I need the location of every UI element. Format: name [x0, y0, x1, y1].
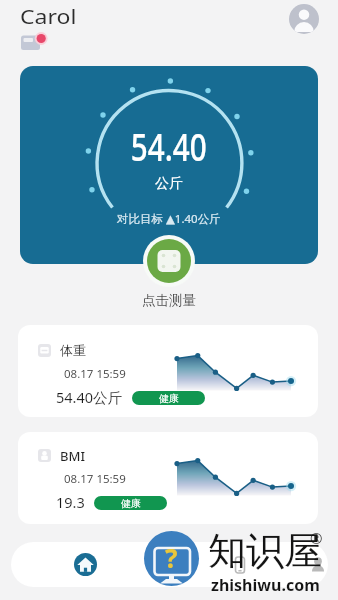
- button[interactable]: Devices: [208, 542, 272, 587]
- staticText: 19.3: [56, 492, 85, 512]
- button[interactable]: 54.40: [20, 66, 318, 264]
- staticText: 对比目标 ▲1.40公斤: [117, 211, 221, 227]
- staticText: Carol: [20, 3, 76, 30]
- button[interactable]: Profile: [286, 542, 328, 587]
- staticText: 体重: [60, 342, 86, 358]
- staticText: 54.40公斤: [56, 387, 123, 407]
- staticText: 08.17 15:59: [64, 471, 126, 487]
- staticText: ®: [310, 528, 323, 548]
- button[interactable]: Statistics: [131, 542, 195, 587]
- staticText: 健康: [159, 392, 179, 405]
- button[interactable]: Profile: [289, 4, 319, 34]
- staticText: 54.40: [131, 120, 207, 172]
- staticText: 08.17 15:59: [64, 366, 126, 382]
- button[interactable]: BMI: [18, 432, 318, 524]
- button[interactable]: Messages: [20, 32, 48, 52]
- button[interactable]: Start measurement: [147, 239, 191, 283]
- button[interactable]: 体重: [18, 325, 318, 417]
- staticText: 知识屋: [208, 527, 322, 575]
- staticText: 健康: [121, 497, 141, 510]
- staticText: 公斤: [155, 175, 183, 193]
- staticText: zhishiwu.com: [211, 574, 320, 596]
- staticText: BMI: [60, 447, 86, 465]
- button[interactable]: Home: [53, 542, 117, 587]
- staticText: ?: [165, 540, 178, 568]
- staticText: 点击测量: [142, 292, 196, 309]
